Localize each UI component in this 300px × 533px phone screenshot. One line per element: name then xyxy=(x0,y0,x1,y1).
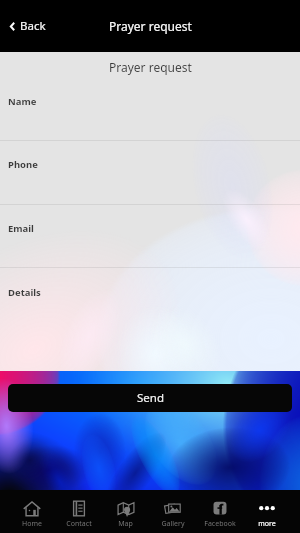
staticText: Email xyxy=(8,222,34,235)
button[interactable]: Home xyxy=(9,490,55,533)
button[interactable]: more xyxy=(243,490,290,533)
staticText: Phone xyxy=(8,158,38,171)
button[interactable]: Gallery xyxy=(149,490,196,533)
staticText: Home xyxy=(22,519,42,529)
staticText: more xyxy=(258,519,276,529)
staticText: Facebook xyxy=(204,519,236,529)
staticText: Contact xyxy=(66,519,92,529)
staticText: Map xyxy=(118,519,133,529)
button[interactable]: Facebook xyxy=(196,490,243,533)
staticText: Name xyxy=(8,95,37,108)
button[interactable]: Map xyxy=(102,490,149,533)
button[interactable]: Send xyxy=(8,384,292,412)
staticText: Details xyxy=(8,286,41,299)
staticText: Prayer request xyxy=(109,18,192,34)
button[interactable]: Back xyxy=(5,10,51,42)
staticText: Prayer request xyxy=(109,59,192,75)
staticText: Gallery xyxy=(161,519,185,529)
staticText: Back xyxy=(20,18,46,34)
button[interactable]: Contact xyxy=(55,490,102,533)
staticText: Send xyxy=(137,390,164,406)
